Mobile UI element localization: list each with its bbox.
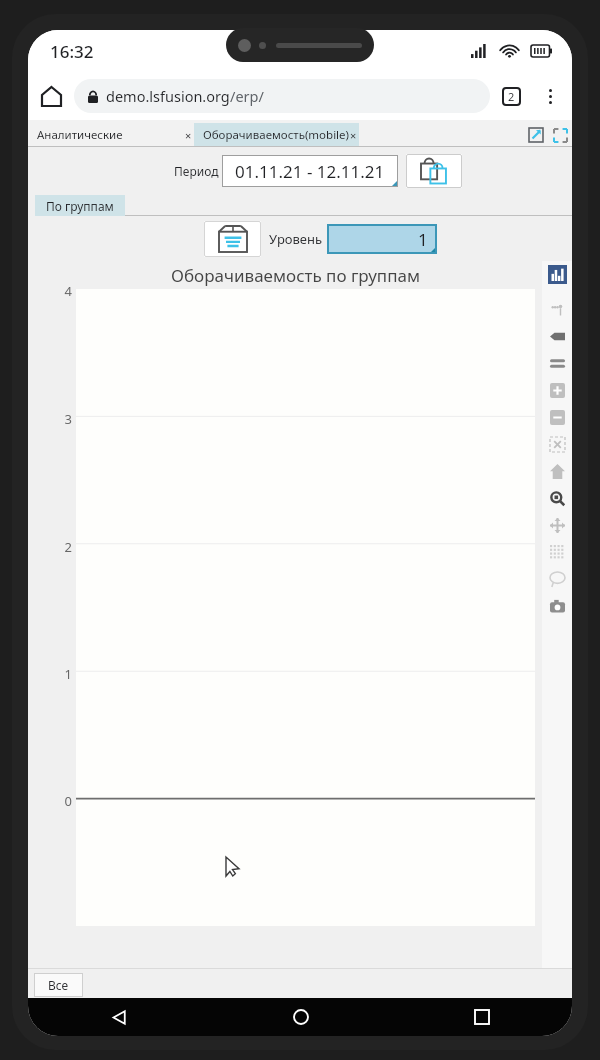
button[interactable]: Goods [406, 154, 462, 188]
staticText: Аналитические отчеты(mobile) [37, 127, 185, 143]
staticText: 3 [42, 410, 72, 428]
button[interactable]: Home [210, 998, 391, 1036]
staticText: Оборачиваемость по группам [171, 264, 420, 287]
button[interactable]: Lines [542, 350, 572, 377]
staticText: По группам [46, 198, 114, 214]
staticText: /erp/ [230, 86, 264, 106]
staticText: 1 [42, 665, 72, 683]
button[interactable]: Trend [542, 296, 572, 323]
button[interactable]: Back [28, 998, 210, 1036]
button[interactable]: demo.lsfusion.org [74, 79, 490, 113]
staticText: Период [174, 163, 219, 179]
button[interactable]: Marker [542, 323, 572, 350]
button[interactable]: Pan [542, 512, 572, 539]
button[interactable]: Chart type [548, 265, 567, 284]
button[interactable]: Home [28, 73, 74, 119]
button[interactable]: 1 [327, 224, 437, 254]
staticText: 1 [418, 228, 428, 251]
staticText: 4 [42, 282, 72, 300]
button[interactable]: More options [532, 78, 568, 114]
button[interactable]: Grid [542, 539, 572, 566]
staticText: 2 [42, 538, 72, 556]
button[interactable]: Оборачиваемость(mobile) [194, 123, 359, 147]
button[interactable]: Group [204, 221, 261, 257]
button[interactable]: Expand [524, 123, 548, 147]
button[interactable]: Comment [542, 566, 572, 593]
button[interactable]: Аналитические отчеты(mobile) [28, 123, 194, 147]
staticText: Все [48, 977, 69, 993]
button[interactable]: Recents [391, 998, 572, 1036]
button[interactable]: Zoom in [542, 377, 572, 404]
button[interactable]: Zoom out [542, 404, 572, 431]
button[interactable]: По группам [35, 195, 125, 216]
button[interactable]: Home [542, 458, 572, 485]
staticText: Оборачиваемость(mobile) [203, 127, 350, 143]
staticText: Уровень [269, 230, 323, 248]
button[interactable]: 01.11.21 - 12.11.21 [222, 155, 398, 187]
button[interactable]: Camera [542, 593, 572, 620]
button[interactable]: Tabs: 2 [490, 75, 532, 117]
staticText: 16:32 [50, 40, 94, 63]
button[interactable]: Collapse [548, 123, 572, 147]
staticText: 2 [508, 89, 515, 104]
staticText: 01.11.21 - 12.11.21 [235, 160, 385, 183]
button[interactable]: Fit [542, 431, 572, 458]
staticText: 0 [42, 792, 72, 810]
button[interactable]: Search [542, 485, 572, 512]
staticText: demo.lsfusion.org [106, 86, 230, 106]
button[interactable]: Все [34, 973, 83, 997]
